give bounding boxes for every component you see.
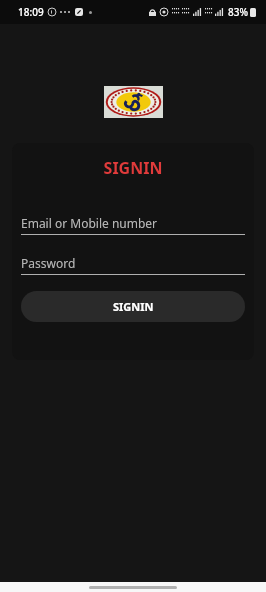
- button[interactable]: SIGNIN: [21, 291, 245, 322]
- button[interactable]: Email or Mobile number: [21, 215, 245, 235]
- staticText: Password: [21, 255, 76, 271]
- staticText: SIGNIN: [12, 157, 254, 179]
- other: Home: [89, 586, 177, 589]
- staticText: SIGNIN: [113, 299, 154, 314]
- button[interactable]: Password: [21, 255, 245, 275]
- staticText: Email or Mobile number: [21, 215, 158, 231]
- staticText: 18:09: [18, 5, 44, 19]
- staticText: 83%: [228, 5, 248, 19]
